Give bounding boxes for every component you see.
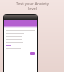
button[interactable]: Next bbox=[30, 52, 35, 55]
staticText: Test your Anxiety bbox=[16, 1, 49, 6]
button[interactable] bbox=[4, 15, 37, 20]
staticText: level bbox=[28, 6, 37, 11]
